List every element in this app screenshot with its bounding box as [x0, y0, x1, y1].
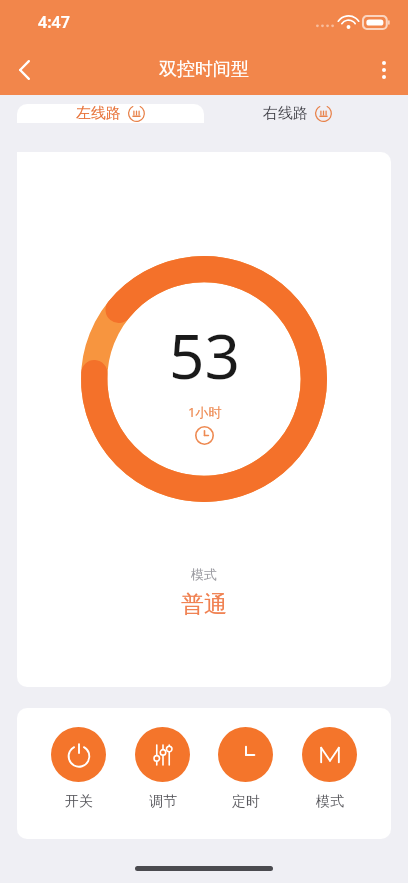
- staticText: 模式: [191, 566, 217, 582]
- staticText: 左线路: [76, 104, 121, 123]
- staticText: 模式: [316, 793, 344, 811]
- staticText: 右线路: [263, 104, 308, 123]
- staticText: 53: [169, 313, 240, 397]
- button[interactable]: 右线路: [204, 104, 391, 123]
- button[interactable]: Back: [0, 46, 48, 94]
- staticText: 1小时: [188, 403, 222, 421]
- button[interactable]: 普通: [181, 590, 227, 619]
- button[interactable]: 调节: [131, 727, 194, 811]
- staticText: 双控时间型: [159, 58, 249, 81]
- staticText: 定时: [232, 793, 260, 811]
- staticText: 开关: [65, 793, 93, 811]
- button[interactable]: 定时: [214, 727, 277, 811]
- button[interactable]: 开关: [47, 727, 110, 811]
- staticText: 调节: [149, 793, 177, 811]
- button[interactable]: More options: [360, 46, 408, 94]
- button[interactable]: 左线路: [17, 104, 204, 123]
- staticText: 4:47: [38, 11, 70, 33]
- button[interactable]: 模式: [298, 727, 361, 811]
